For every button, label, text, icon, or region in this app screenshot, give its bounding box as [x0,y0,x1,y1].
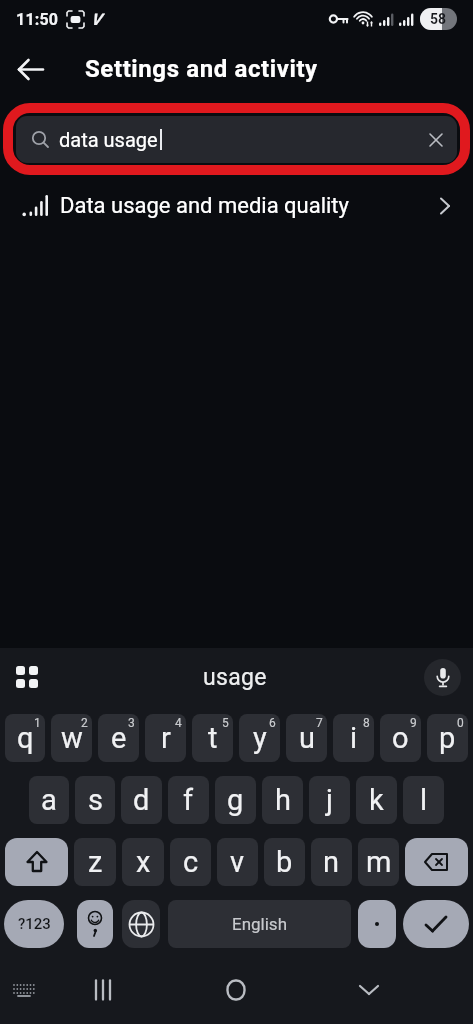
button[interactable]: w [51,714,92,762]
staticText: data usage [59,128,158,151]
staticText: d [133,783,150,817]
staticText: m [366,845,392,879]
button[interactable]: t [192,714,233,762]
button[interactable] [358,983,380,997]
button[interactable]: n [311,838,352,886]
staticText: 4 [175,716,182,730]
staticText: q [17,721,34,755]
staticText: z [88,845,103,879]
staticText: V [91,10,102,29]
staticText: 58 [430,11,447,27]
button[interactable] [226,980,246,1000]
staticText: 5 [222,716,229,730]
button[interactable]: k [356,776,397,824]
staticText: 7 [316,716,323,730]
button[interactable]: o [380,714,421,762]
staticText: r [161,721,171,755]
button[interactable]: h [262,776,303,824]
button[interactable] [424,659,461,696]
staticText: usage [203,664,267,691]
button[interactable]: a [29,776,69,824]
staticText: c [183,845,199,879]
staticText: u [299,721,315,755]
button[interactable] [77,900,113,948]
button[interactable]: c [170,838,211,886]
staticText: 9 [410,716,417,730]
button[interactable] [93,980,113,1000]
staticText: k [369,783,384,817]
button[interactable]: l [403,776,444,824]
staticText: 1 [34,716,41,730]
button[interactable] [122,900,160,948]
button[interactable] [405,838,468,886]
staticText: p [439,721,456,755]
staticText: 11:50 [16,10,59,29]
button[interactable]: i [333,714,374,762]
staticText: a [41,783,57,817]
staticText: w [61,721,83,755]
button[interactable] [429,133,443,147]
staticText: Settings and activity [85,55,318,83]
button[interactable]: z [74,838,116,886]
button[interactable]: u [286,714,327,762]
button[interactable]: Data usage and media quality [0,180,473,232]
button[interactable]: s [75,776,115,824]
button[interactable] [12,982,36,998]
staticText: 8 [363,716,370,730]
staticText: 3 [128,716,135,730]
button[interactable]: usage [203,664,267,691]
staticText: e [111,721,127,755]
button[interactable]: j [309,776,350,824]
staticText: i [350,721,358,755]
staticText: h [275,783,291,817]
button[interactable] [403,900,469,948]
staticText: 2 [81,716,88,730]
button[interactable]: q [5,714,45,762]
button[interactable] [16,666,38,688]
staticText: ?123 [18,915,51,933]
button[interactable]: m [358,838,399,886]
button[interactable]: ?123 [4,900,64,948]
staticText: v [230,845,245,879]
button[interactable]: r [145,714,186,762]
staticText: y [253,721,267,755]
button[interactable] [5,838,68,886]
button[interactable]: e [98,714,139,762]
staticText: x [136,845,151,879]
staticText: English [232,914,288,934]
button[interactable] [358,900,396,948]
staticText: s [88,783,103,817]
button[interactable]: b [264,838,305,886]
staticText: 0 [457,716,464,730]
button[interactable]: data usage [16,116,457,163]
button[interactable]: p [427,714,468,762]
button[interactable]: f [168,776,209,824]
button[interactable]: x [122,838,164,886]
staticText: n [323,845,340,879]
button[interactable]: d [121,776,162,824]
staticText: f [183,783,194,817]
staticText: j [326,783,333,817]
button[interactable] [18,56,45,83]
button[interactable]: g [215,776,256,824]
staticText: l [420,783,428,817]
button[interactable]: v [217,838,258,886]
staticText: b [276,845,293,879]
staticText: g [227,783,244,817]
button[interactable]: English [168,900,351,948]
staticText: o [392,721,409,755]
staticText: Data usage and media quality [60,193,349,219]
staticText: 6 [269,716,276,730]
staticText: t [208,721,218,755]
button[interactable]: y [239,714,280,762]
